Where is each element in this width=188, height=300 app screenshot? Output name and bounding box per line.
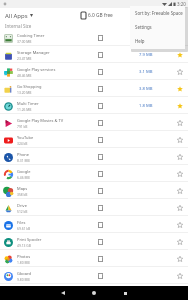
staticText: Google Play services <box>17 67 56 72</box>
button[interactable]: Select app <box>94 116 106 130</box>
staticText: 791 kB <box>17 124 28 128</box>
button[interactable]: Favorite <box>174 99 186 113</box>
button[interactable]: Favorite <box>174 235 186 249</box>
staticText: 7.9 MB <box>139 52 153 58</box>
staticText: 324 kB <box>17 141 28 145</box>
staticText: Phone <box>17 152 30 157</box>
button[interactable]: Photos <box>0 250 188 267</box>
button[interactable]: Settings <box>130 20 185 34</box>
staticText: 8.31 MB <box>17 158 30 162</box>
button[interactable]: Favorite <box>174 133 186 147</box>
button[interactable]: Favorite <box>174 167 186 181</box>
staticText: 13.20 MB <box>17 90 32 94</box>
button[interactable]: All Apps <box>0 8 37 23</box>
staticText: Photos <box>17 254 31 259</box>
staticText: Go Shopping <box>17 84 42 89</box>
staticText: 1.80 MB <box>17 260 30 264</box>
staticText: Google <box>17 169 31 174</box>
button[interactable]: Favorite <box>174 65 186 79</box>
staticText: 49.13 GB <box>17 243 31 247</box>
button[interactable]: Favorite <box>174 252 186 266</box>
button[interactable]: YouTube <box>0 131 188 148</box>
button[interactable]: Select app <box>94 150 106 164</box>
staticText: Drive <box>17 203 27 208</box>
staticText: 358 kB <box>17 192 28 196</box>
button[interactable]: Select app <box>94 235 106 249</box>
button[interactable]: Favorite <box>174 218 186 232</box>
staticText: Gboard <box>17 271 32 276</box>
staticText: 3.8 MB <box>139 86 153 92</box>
staticText: 3:20 <box>177 1 186 7</box>
button[interactable]: Select app <box>94 82 106 96</box>
button[interactable]: Select app <box>94 167 106 181</box>
button[interactable]: Drive <box>0 199 188 216</box>
staticText: 23.47 MB <box>17 56 32 60</box>
button[interactable]: Select app <box>94 48 106 62</box>
button[interactable]: Home <box>88 287 100 299</box>
button[interactable]: Cooking Timer <box>0 29 188 46</box>
staticText: Storage Manager <box>17 50 50 55</box>
staticText: Google Play Movies & TV <box>17 118 64 123</box>
button[interactable]: Select app <box>94 269 106 283</box>
staticText: Files <box>17 220 26 225</box>
staticText: Maps <box>17 186 28 191</box>
button[interactable]: Select app <box>94 65 106 79</box>
button[interactable]: Favorite <box>174 150 186 164</box>
button[interactable]: Multi Timer <box>0 97 188 114</box>
staticText: Help <box>135 38 145 44</box>
button[interactable]: Select app <box>94 31 106 45</box>
button[interactable]: Gboard <box>0 267 188 284</box>
button[interactable]: Select app <box>94 133 106 147</box>
staticText: Sort by: Freeable Space <box>135 10 183 16</box>
staticText: 9.80 MB <box>17 277 30 281</box>
button[interactable]: Google Play services <box>0 63 188 80</box>
button[interactable]: Favorite <box>174 184 186 198</box>
button[interactable]: Google Play Movies & TV <box>0 114 188 131</box>
staticText: Print Spooler <box>17 237 42 242</box>
staticText: 3.1 MB <box>139 69 153 75</box>
button[interactable]: Favorite <box>174 31 186 45</box>
button[interactable]: Select app <box>94 201 106 215</box>
staticText: 6.46 MB <box>17 175 30 179</box>
button[interactable]: Select app <box>94 184 106 198</box>
button[interactable]: Select app <box>94 99 106 113</box>
button[interactable]: Recent apps <box>119 287 131 299</box>
button[interactable]: Files <box>0 216 188 233</box>
button[interactable]: Storage Manager <box>0 46 188 63</box>
button[interactable]: Go Shopping <box>0 80 188 97</box>
staticText: Settings <box>135 24 152 30</box>
staticText: Cooking Timer <box>17 33 45 38</box>
button[interactable]: Phone <box>0 148 188 165</box>
staticText: Multi Timer <box>17 101 39 106</box>
button[interactable]: Print Spooler <box>0 233 188 250</box>
staticText: 37.00 MB <box>17 39 32 43</box>
button[interactable]: Select app <box>94 252 106 266</box>
button[interactable]: Favorite <box>174 201 186 215</box>
button[interactable]: Favorite <box>174 48 186 62</box>
staticText: 1.8 MB <box>139 103 153 109</box>
button[interactable]: Favorite <box>174 116 186 130</box>
button[interactable]: Select app <box>94 218 106 232</box>
button[interactable]: Maps <box>0 182 188 199</box>
staticText: 512 kB <box>17 209 28 213</box>
staticText: Internal Size <box>5 23 32 29</box>
staticText: YouTube <box>17 135 34 140</box>
button[interactable]: Sort by: Freeable Space <box>130 6 185 20</box>
staticText: 69.61 kB <box>17 226 31 230</box>
button[interactable]: Google <box>0 165 188 182</box>
button[interactable]: Help <box>130 34 185 48</box>
button[interactable]: Back <box>57 287 69 299</box>
button[interactable]: Favorite <box>174 269 186 283</box>
staticText: All Apps <box>5 12 28 20</box>
button[interactable]: Favorite <box>174 82 186 96</box>
staticText: 11.26 MB <box>17 107 32 111</box>
staticText: 6.0 GB free <box>88 12 113 19</box>
staticText: 48.46 MB <box>17 73 32 77</box>
